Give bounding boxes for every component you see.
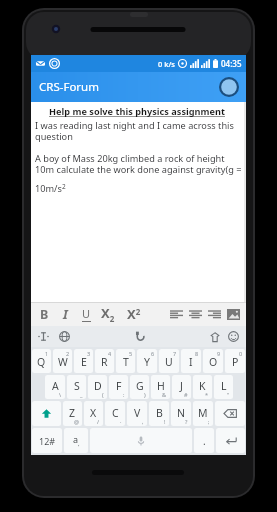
button[interactable]: U bbox=[159, 349, 179, 373]
staticText: CRS-Forum bbox=[39, 79, 99, 95]
button[interactable]: H bbox=[151, 375, 170, 399]
staticText: @ bbox=[74, 418, 79, 425]
staticText: a, bbox=[73, 433, 80, 448]
button[interactable]: Y bbox=[137, 349, 157, 373]
staticText: 0 bbox=[239, 350, 243, 357]
staticText: " bbox=[227, 391, 230, 398]
button[interactable]: Subscript bbox=[97, 302, 119, 326]
staticText: 0 k/s bbox=[158, 59, 175, 69]
button[interactable]: I bbox=[181, 349, 201, 373]
button[interactable]: S bbox=[67, 375, 86, 399]
button[interactable]: Insert image bbox=[224, 302, 243, 326]
button[interactable]: Q bbox=[32, 349, 51, 373]
button[interactable]: M bbox=[193, 401, 213, 426]
button[interactable]: O bbox=[203, 349, 223, 373]
button[interactable]: Handwriting bbox=[131, 328, 148, 345]
button[interactable]: Period bbox=[194, 428, 214, 453]
staticText: · bbox=[120, 418, 122, 425]
button[interactable]: K bbox=[193, 375, 212, 399]
button[interactable]: Language bbox=[64, 428, 88, 453]
staticText: ? bbox=[185, 418, 188, 425]
staticText: H bbox=[157, 379, 165, 393]
button[interactable]: Emoji bbox=[225, 328, 242, 345]
button[interactable]: Symbols bbox=[32, 428, 62, 453]
button[interactable]: Align bbox=[167, 302, 186, 326]
staticText: V bbox=[134, 406, 141, 420]
button[interactable]: W bbox=[53, 349, 72, 373]
staticText: ; bbox=[208, 418, 210, 425]
button[interactable]: R bbox=[95, 349, 114, 373]
button[interactable]: Z bbox=[63, 401, 82, 426]
staticText: U bbox=[82, 306, 91, 321]
button[interactable]: X bbox=[84, 401, 103, 426]
staticText: W bbox=[58, 355, 68, 369]
staticText: S bbox=[74, 379, 80, 393]
button[interactable]: Align bbox=[186, 302, 205, 326]
button[interactable]: Stickers bbox=[206, 328, 223, 345]
staticText: T bbox=[123, 355, 129, 369]
staticText: R bbox=[101, 355, 108, 369]
button[interactable]: E bbox=[74, 349, 93, 373]
staticText: * bbox=[205, 391, 209, 398]
button[interactable]: D bbox=[88, 375, 107, 399]
button[interactable]: T bbox=[116, 349, 135, 373]
staticText: 12# bbox=[39, 435, 56, 447]
staticText: K bbox=[199, 379, 206, 393]
staticText: / bbox=[97, 418, 100, 425]
staticText: ! bbox=[164, 418, 166, 425]
button[interactable]: P bbox=[225, 349, 245, 373]
staticText: \ bbox=[59, 391, 62, 398]
staticText: C bbox=[112, 406, 119, 420]
staticText: 04:35 bbox=[221, 58, 242, 69]
staticText: X2 bbox=[101, 304, 115, 325]
button[interactable]: V bbox=[127, 401, 147, 426]
staticText: E bbox=[81, 355, 87, 369]
staticText: ( bbox=[102, 391, 104, 398]
button[interactable]: Superscript bbox=[123, 302, 145, 326]
staticText: I bbox=[63, 306, 68, 323]
button[interactable]: N bbox=[171, 401, 191, 426]
button[interactable]: Backspace bbox=[215, 401, 245, 426]
staticText: Q bbox=[37, 355, 46, 369]
staticText: , bbox=[142, 418, 144, 425]
staticText: 2 bbox=[66, 350, 70, 357]
button[interactable]: B bbox=[34, 302, 55, 326]
staticText: M bbox=[198, 406, 208, 420]
staticText: 8 bbox=[195, 350, 199, 357]
button[interactable]: Space bbox=[90, 428, 192, 453]
staticText: 7 bbox=[173, 350, 177, 357]
staticText: 9 bbox=[217, 350, 221, 357]
button[interactable]: A bbox=[45, 375, 65, 399]
staticText: X2 bbox=[127, 305, 141, 323]
staticText: B bbox=[40, 306, 49, 323]
staticText: J bbox=[180, 379, 183, 393]
button[interactable]: B bbox=[149, 401, 169, 426]
button[interactable]: Text cursor bbox=[35, 328, 52, 345]
button[interactable]: Align bbox=[205, 302, 224, 326]
staticText: 4 bbox=[108, 350, 112, 357]
staticText: : bbox=[123, 391, 125, 398]
staticText: X bbox=[90, 406, 97, 420]
button[interactable]: I bbox=[55, 302, 76, 326]
button[interactable]: C bbox=[105, 401, 125, 426]
button[interactable]: Enter bbox=[216, 428, 245, 453]
staticText: O bbox=[209, 355, 218, 369]
staticText: Y bbox=[144, 355, 150, 369]
staticText: . bbox=[203, 434, 206, 448]
staticText: 6 bbox=[151, 350, 155, 357]
button[interactable]: G bbox=[130, 375, 149, 399]
button[interactable]: J bbox=[172, 375, 191, 399]
button[interactable]: Language bbox=[56, 328, 73, 345]
staticText: A boy of Mass 20kg climbed a rock of hei… bbox=[35, 152, 242, 195]
staticText: & bbox=[162, 391, 167, 398]
staticText: _ bbox=[80, 391, 83, 398]
staticText: L bbox=[221, 379, 227, 393]
button[interactable]: F bbox=[109, 375, 128, 399]
button[interactable]: Shift bbox=[32, 401, 61, 426]
button[interactable]: Underline bbox=[76, 302, 97, 326]
staticText: # bbox=[184, 391, 188, 398]
button[interactable]: L bbox=[214, 375, 233, 399]
staticText: Help me solve this physics assignment bbox=[49, 105, 228, 118]
staticText: 1 bbox=[45, 350, 49, 357]
button[interactable]: Profile bbox=[218, 76, 240, 98]
